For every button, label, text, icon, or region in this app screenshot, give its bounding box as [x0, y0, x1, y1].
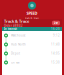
staticText: SPEED [26, 11, 37, 16]
staticText: Track & Trace [4, 19, 29, 24]
staticText: Live [53, 21, 58, 25]
staticText: Track & Trace [24, 17, 39, 20]
button[interactable]: On van [2, 58, 62, 67]
staticText: 15:30 [51, 61, 60, 64]
staticText: In transit [4, 27, 17, 31]
staticText: Depot [11, 52, 20, 55]
staticText: Order #8842 [4, 24, 23, 27]
staticText: 16:20 [51, 27, 60, 31]
button[interactable]: Depot [2, 49, 62, 58]
staticText: Warehouse [11, 34, 26, 37]
staticText: 14:05 [51, 52, 60, 55]
staticText: Hub North [11, 43, 26, 46]
button[interactable]: Hub North [2, 40, 62, 49]
staticText: 9:12 [53, 34, 60, 37]
staticText: 11:40 [51, 43, 60, 46]
staticText: On van [11, 61, 20, 64]
button[interactable]: Warehouse [2, 31, 62, 40]
